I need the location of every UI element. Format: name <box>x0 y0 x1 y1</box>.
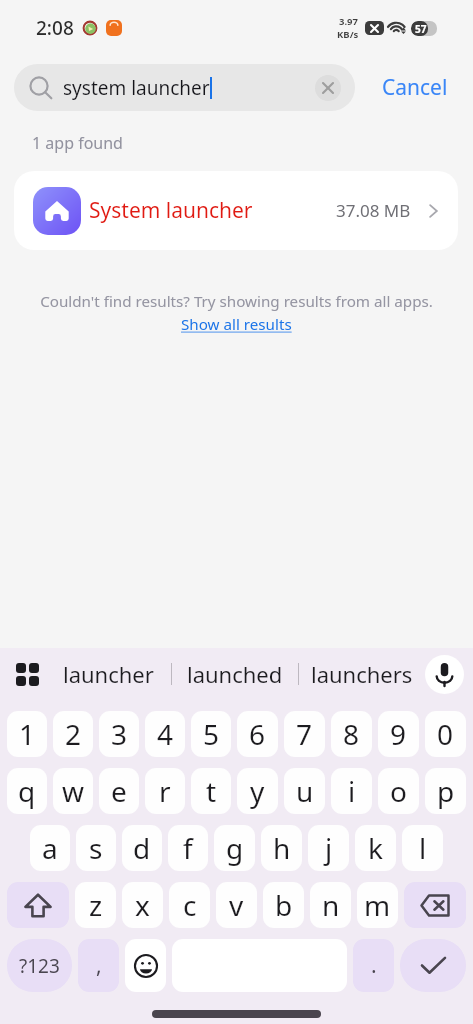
button[interactable]: h <box>261 825 302 871</box>
button[interactable]: 6 <box>237 711 278 757</box>
button[interactable]: 8 <box>331 711 372 757</box>
staticText: b <box>275 886 293 924</box>
staticText: 9 <box>390 715 407 753</box>
staticText: 0 <box>437 715 454 753</box>
button[interactable]: q <box>7 768 47 814</box>
staticText: 8 <box>343 715 360 753</box>
staticText: y <box>250 772 265 810</box>
staticText: Couldn't find results? Try showing resul… <box>40 291 433 312</box>
button[interactable]: j <box>308 825 349 871</box>
button[interactable]: 1 <box>7 711 47 757</box>
button[interactable]: e <box>99 768 139 814</box>
staticText: 57 <box>415 22 427 36</box>
staticText: p <box>437 772 455 810</box>
button[interactable]: m <box>357 882 398 928</box>
button[interactable]: l <box>402 825 443 871</box>
button[interactable]: 3 <box>99 711 139 757</box>
staticText: i <box>348 772 356 810</box>
staticText: s <box>89 829 103 867</box>
staticText: 4 <box>157 715 174 753</box>
staticText: 5 <box>203 715 220 753</box>
button[interactable]: x <box>122 882 163 928</box>
staticText: z <box>89 886 103 924</box>
button[interactable]: u <box>284 768 325 814</box>
button[interactable]: 5 <box>191 711 231 757</box>
staticText: u <box>296 772 314 810</box>
button[interactable]: d <box>122 825 162 871</box>
button[interactable]: 9 <box>378 711 419 757</box>
staticText: . <box>371 951 377 980</box>
button[interactable]: Enter <box>400 939 466 992</box>
staticText: m <box>364 886 391 924</box>
button[interactable]: p <box>425 768 466 814</box>
staticText: 2 <box>65 715 82 753</box>
staticText: r <box>159 772 171 810</box>
staticText: l <box>419 829 427 867</box>
staticText: t <box>206 772 217 810</box>
button[interactable]: Keyboard settings <box>9 656 45 692</box>
staticText: Show all results <box>181 314 292 335</box>
staticText: g <box>226 829 244 867</box>
button[interactable]: 7 <box>284 711 325 757</box>
button[interactable]: System launcher <box>14 171 458 250</box>
button[interactable]: i <box>331 768 372 814</box>
button[interactable]: o <box>378 768 419 814</box>
staticText: launched <box>187 659 283 689</box>
button[interactable]: 4 <box>145 711 185 757</box>
button[interactable]: launcher <box>45 648 171 700</box>
button[interactable]: v <box>216 882 257 928</box>
button[interactable]: system launcher <box>14 64 355 111</box>
button[interactable]: ?123 <box>7 939 72 992</box>
staticText: v <box>229 886 244 924</box>
staticText: k <box>368 829 383 867</box>
button[interactable]: c <box>169 882 210 928</box>
button[interactable]: g <box>214 825 255 871</box>
staticText: a <box>42 829 58 867</box>
button[interactable]: Show all results <box>181 314 292 335</box>
button[interactable]: t <box>191 768 231 814</box>
button[interactable]: Voice input <box>425 655 464 694</box>
staticText: f <box>183 829 193 867</box>
button[interactable]: , <box>78 939 119 992</box>
button[interactable]: n <box>310 882 351 928</box>
staticText: launcher <box>63 659 154 689</box>
button[interactable]: Cancel <box>374 64 456 111</box>
staticText: d <box>133 829 151 867</box>
staticText: o <box>390 772 407 810</box>
button[interactable]: Clear <box>315 75 341 101</box>
button[interactable]: launchers <box>299 648 425 700</box>
button[interactable]: a <box>30 825 70 871</box>
staticText: 37.08 MB <box>336 199 411 222</box>
button[interactable]: launched <box>172 648 298 700</box>
staticText: 3 <box>111 715 128 753</box>
staticText: 1 app found <box>32 132 123 154</box>
button[interactable]: 0 <box>425 711 466 757</box>
button[interactable]: w <box>53 768 93 814</box>
button[interactable]: z <box>75 882 116 928</box>
staticText: Cancel <box>382 73 448 102</box>
button[interactable]: f <box>168 825 208 871</box>
button[interactable]: k <box>355 825 396 871</box>
button[interactable]: b <box>263 882 304 928</box>
button[interactable]: Emoji <box>125 939 166 992</box>
staticText: 2:08 <box>36 15 74 41</box>
button[interactable]: 2 <box>53 711 93 757</box>
button[interactable]: Backspace <box>404 882 466 928</box>
button[interactable]: . <box>353 939 394 992</box>
button[interactable]: y <box>237 768 278 814</box>
button[interactable]: Shift <box>7 882 69 928</box>
staticText: 7 <box>296 715 313 753</box>
staticText: system launcher <box>63 75 210 101</box>
button[interactable]: r <box>145 768 185 814</box>
staticText: e <box>111 772 127 810</box>
staticText: 1 <box>19 715 36 753</box>
staticText: w <box>62 772 85 810</box>
staticText: n <box>322 886 340 924</box>
button[interactable]: s <box>76 825 116 871</box>
staticText: 3.97 <box>339 15 358 28</box>
staticText: h <box>273 829 291 867</box>
staticText: KB/s <box>337 28 359 41</box>
staticText: ?123 <box>19 953 60 979</box>
staticText: j <box>325 829 333 867</box>
